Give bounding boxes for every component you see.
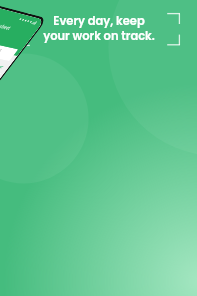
- button[interactable]: Search by timesheet description: [0, 38, 18, 61]
- staticText: Every day, keep your work on track.: [43, 13, 155, 44]
- button[interactable]: Sort: [0, 63, 7, 72]
- button[interactable]: Week Day (Standard shift): [0, 63, 1, 101]
- staticText: Search by timesheet description: [0, 42, 14, 59]
- staticText: Timesheet: [0, 21, 12, 31]
